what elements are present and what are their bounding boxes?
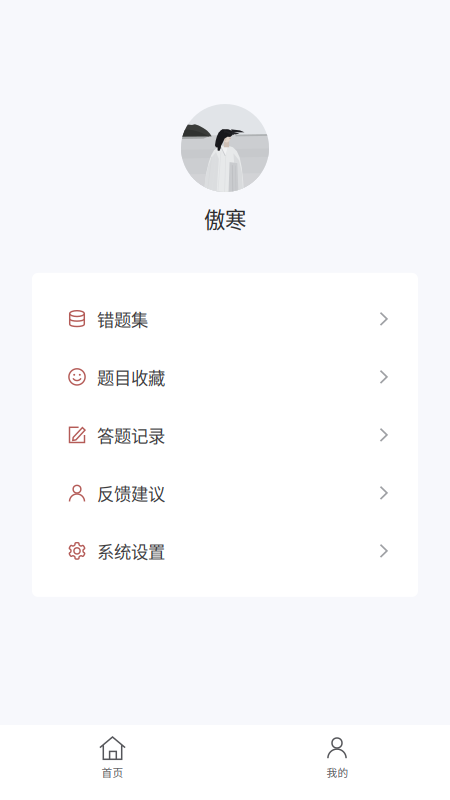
staticText: 反馈建议 bbox=[97, 480, 165, 505]
button[interactable]: 答题记录 bbox=[32, 406, 418, 464]
button[interactable]: 我的 bbox=[225, 725, 450, 800]
staticText: 答题记录 bbox=[97, 422, 165, 447]
staticText: 我的 bbox=[326, 764, 348, 780]
button[interactable]: 系统设置 bbox=[32, 522, 418, 580]
staticText: 系统设置 bbox=[97, 538, 165, 563]
button[interactable]: 反馈建议 bbox=[32, 464, 418, 522]
button[interactable]: 题目收藏 bbox=[32, 348, 418, 406]
staticText: 傲寒 bbox=[204, 203, 246, 234]
staticText: 首页 bbox=[101, 764, 123, 780]
button[interactable]: 首页 bbox=[0, 725, 225, 800]
staticText: 错题集 bbox=[97, 306, 148, 331]
staticText: 题目收藏 bbox=[97, 364, 165, 389]
button[interactable]: 错题集 bbox=[32, 290, 418, 348]
